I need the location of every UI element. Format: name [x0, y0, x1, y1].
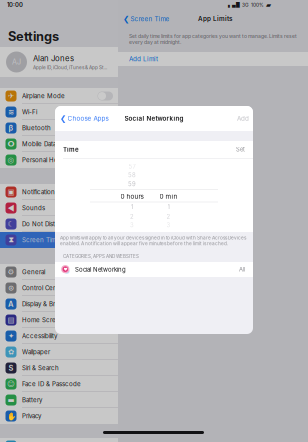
staticText: Social Networking — [124, 115, 183, 122]
button[interactable]: ⚙ — [0, 264, 118, 280]
staticText: 100% — [251, 2, 264, 8]
staticText: Control Centre — [22, 284, 65, 292]
button[interactable]: ≋ — [0, 104, 118, 120]
staticText: Home Screen — [22, 316, 64, 324]
staticText: Sounds — [22, 204, 45, 212]
button[interactable]: Add Limit — [118, 52, 308, 66]
staticText: 57 — [128, 163, 135, 170]
staticText: ▣ — [7, 188, 14, 196]
button[interactable]: ☺ — [0, 376, 118, 392]
staticText: ▬ — [7, 396, 14, 404]
staticText: Screen Time — [130, 15, 169, 23]
staticText: ▖▄█ — [228, 2, 240, 8]
staticText: Choose Apps — [67, 115, 108, 122]
staticText: ⧗ — [8, 236, 13, 244]
staticText: AJ — [12, 58, 21, 66]
staticText: ⊙ — [8, 284, 14, 292]
staticText: All — [239, 266, 245, 273]
staticText: General — [22, 268, 45, 276]
staticText: ◀ — [7, 203, 14, 212]
staticText: 0 hours — [120, 193, 143, 200]
button[interactable]: ▤ — [0, 312, 118, 328]
button[interactable]: ⧗ — [0, 232, 118, 248]
button[interactable]: ✦ — [0, 328, 118, 344]
staticText: S — [8, 363, 13, 372]
staticText: Siri & Search — [22, 364, 59, 372]
staticText: ❮ — [60, 114, 66, 123]
staticText: Set — [236, 146, 245, 153]
staticText: Alan Jones — [33, 54, 74, 63]
button[interactable]: ✈ — [0, 88, 118, 104]
staticText: A — [8, 299, 14, 308]
staticText: 59 — [128, 180, 136, 188]
staticText: 2 — [130, 213, 134, 220]
staticText: Mobile Data — [22, 140, 56, 148]
staticText: App Limits — [198, 15, 232, 23]
staticText: ⵔ — [7, 140, 14, 148]
staticText: 3 — [130, 221, 134, 229]
staticText: ▤ — [7, 316, 14, 324]
staticText: ♥ — [64, 267, 68, 272]
button[interactable]: A — [0, 296, 118, 312]
button[interactable]: ✋ — [0, 408, 118, 424]
staticText: 3G — [242, 2, 249, 8]
staticText: ❮ — [123, 14, 129, 23]
staticText: Time — [63, 146, 79, 153]
staticText: ⚙ — [7, 268, 14, 276]
button[interactable]: A — [0, 438, 118, 442]
button[interactable]: AJ — [0, 47, 118, 77]
staticText: Wi-Fi — [22, 108, 37, 116]
staticText: 2 — [166, 213, 170, 220]
button[interactable]: Time — [55, 141, 253, 158]
staticText: ☾ — [7, 220, 14, 228]
staticText: Wallpaper — [22, 348, 50, 356]
staticText: Social Networking — [75, 266, 126, 273]
button[interactable]: ♥ — [55, 262, 253, 277]
staticText: Apple ID, iCloud, iTunes & App St... — [33, 65, 107, 70]
staticText: ☺ — [7, 380, 15, 388]
button[interactable]: β — [0, 120, 118, 136]
staticText: ✿ — [8, 348, 14, 356]
staticText: 1 — [167, 203, 169, 211]
staticText: Settings — [8, 28, 59, 44]
staticText: Airplane Mode — [22, 92, 65, 100]
staticText: Bluetooth — [22, 124, 51, 132]
button[interactable]: ❮ — [55, 106, 112, 131]
staticText: Add — [237, 115, 249, 122]
staticText: 10:00 — [7, 1, 23, 8]
staticText: 1 — [131, 203, 133, 211]
staticText: Display & Brightness — [22, 300, 80, 308]
button[interactable]: Add — [229, 106, 256, 131]
button[interactable]: ⵔ — [0, 136, 118, 152]
staticText: Face ID & Passcode — [22, 380, 81, 388]
staticText: 58 — [128, 171, 136, 179]
staticText: Accessibility — [22, 332, 57, 340]
staticText: ✦ — [8, 332, 14, 340]
staticText: ≋ — [8, 108, 14, 116]
staticText: ◎ — [7, 156, 14, 164]
staticText: CATEGORIES, APPS AND WEBSITES — [63, 253, 139, 259]
staticText: Add Limit — [129, 55, 158, 63]
button[interactable]: ✿ — [0, 344, 118, 360]
staticText: Set daily time limits for app categories… — [129, 33, 297, 45]
button[interactable]: S — [0, 360, 118, 376]
staticText: Personal Hotspot — [22, 156, 73, 164]
staticText: Battery — [22, 396, 42, 404]
staticText: App limits will apply to all your device… — [60, 235, 246, 246]
staticText: ✋ — [6, 412, 15, 420]
staticText: Notifications — [22, 188, 58, 196]
staticText: ▰ — [266, 1, 271, 9]
button[interactable]: ▬ — [0, 392, 118, 408]
staticText: Privacy — [22, 412, 41, 420]
button[interactable]: ☾ — [0, 216, 118, 232]
button[interactable]: ❮ — [118, 12, 173, 26]
button[interactable]: ⊙ — [0, 280, 118, 296]
button[interactable]: ◀ — [0, 200, 118, 216]
staticText: 0 min — [159, 193, 177, 200]
staticText: Screen Time — [22, 236, 60, 244]
staticText: ✈ — [8, 92, 14, 100]
button[interactable]: ▣ — [0, 184, 118, 200]
staticText: 3 — [166, 221, 170, 229]
button[interactable]: ◎ — [0, 152, 118, 168]
staticText: Do Not Disturb — [22, 220, 65, 228]
